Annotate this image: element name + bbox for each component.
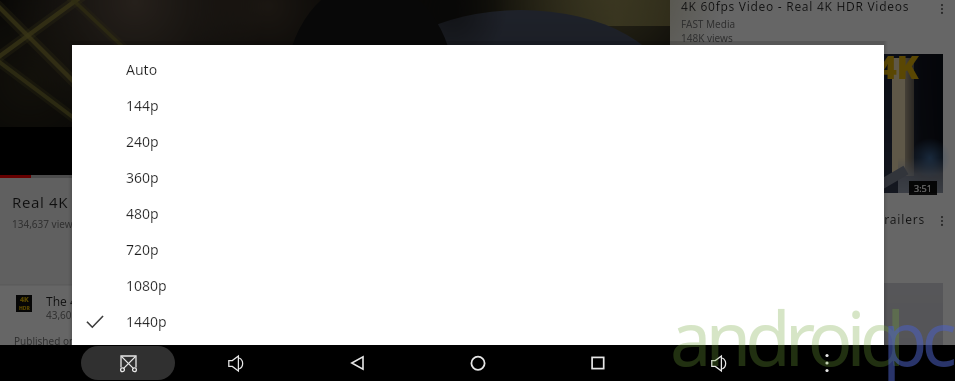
button[interactable]: More options	[818, 350, 838, 376]
staticText: android	[670, 287, 900, 381]
staticText: 43,601 subscribers	[46, 308, 135, 322]
staticText: 4K	[878, 45, 919, 89]
staticText: pc	[882, 287, 952, 381]
staticText: 1440p	[126, 312, 167, 331]
button[interactable]: 1080p	[72, 268, 888, 304]
button[interactable]: 1440p	[72, 304, 888, 340]
staticText: 360p	[126, 168, 159, 187]
staticText: 480p	[126, 204, 159, 223]
button[interactable]: Auto	[72, 52, 888, 88]
staticText: 240p	[126, 132, 159, 151]
staticText: HDR	[19, 305, 30, 312]
staticText: 134,637 views	[12, 217, 78, 231]
staticText: 3:51	[914, 182, 932, 194]
staticText: 4K 60fps Video - Real 4K HDR Videos	[681, 0, 910, 14]
staticText: Real 4K HDR Video	[12, 192, 153, 212]
staticText: Auto	[126, 60, 158, 79]
button[interactable]: 720p	[72, 232, 888, 268]
staticText: 144p	[126, 96, 159, 115]
button[interactable]: 144p	[72, 88, 888, 124]
button[interactable]: Volume	[228, 355, 244, 372]
staticText: 720p	[126, 240, 159, 259]
staticText: 4K	[20, 295, 29, 305]
button[interactable]: 480p	[72, 196, 888, 232]
button[interactable]: 4K 60fps Video - Real 4K HDR Videos	[670, 0, 955, 48]
staticText: FAST Media	[681, 17, 736, 31]
button[interactable]: 4K HDR Movie Trailers	[670, 48, 955, 278]
button[interactable]: More	[934, 0, 950, 20]
staticText: Published on Jan 4, 2019	[14, 334, 129, 348]
staticText: 148K views	[681, 31, 733, 45]
button[interactable]: More	[934, 210, 950, 232]
button[interactable]: Video player	[0, 0, 670, 178]
staticText: 1080p	[126, 276, 167, 295]
button[interactable]: Recent apps	[586, 351, 610, 375]
button[interactable]: Volume	[711, 355, 727, 372]
button[interactable]: Back	[346, 351, 370, 375]
button[interactable]: Screenshot	[81, 346, 175, 380]
staticText: The 4K HDR Channel	[46, 293, 163, 309]
staticText: 4K HDR Movie Trailers	[693, 211, 925, 227]
button[interactable]: 360p	[72, 160, 888, 196]
button[interactable]: Home	[466, 351, 490, 375]
button[interactable]: 240p	[72, 124, 888, 160]
